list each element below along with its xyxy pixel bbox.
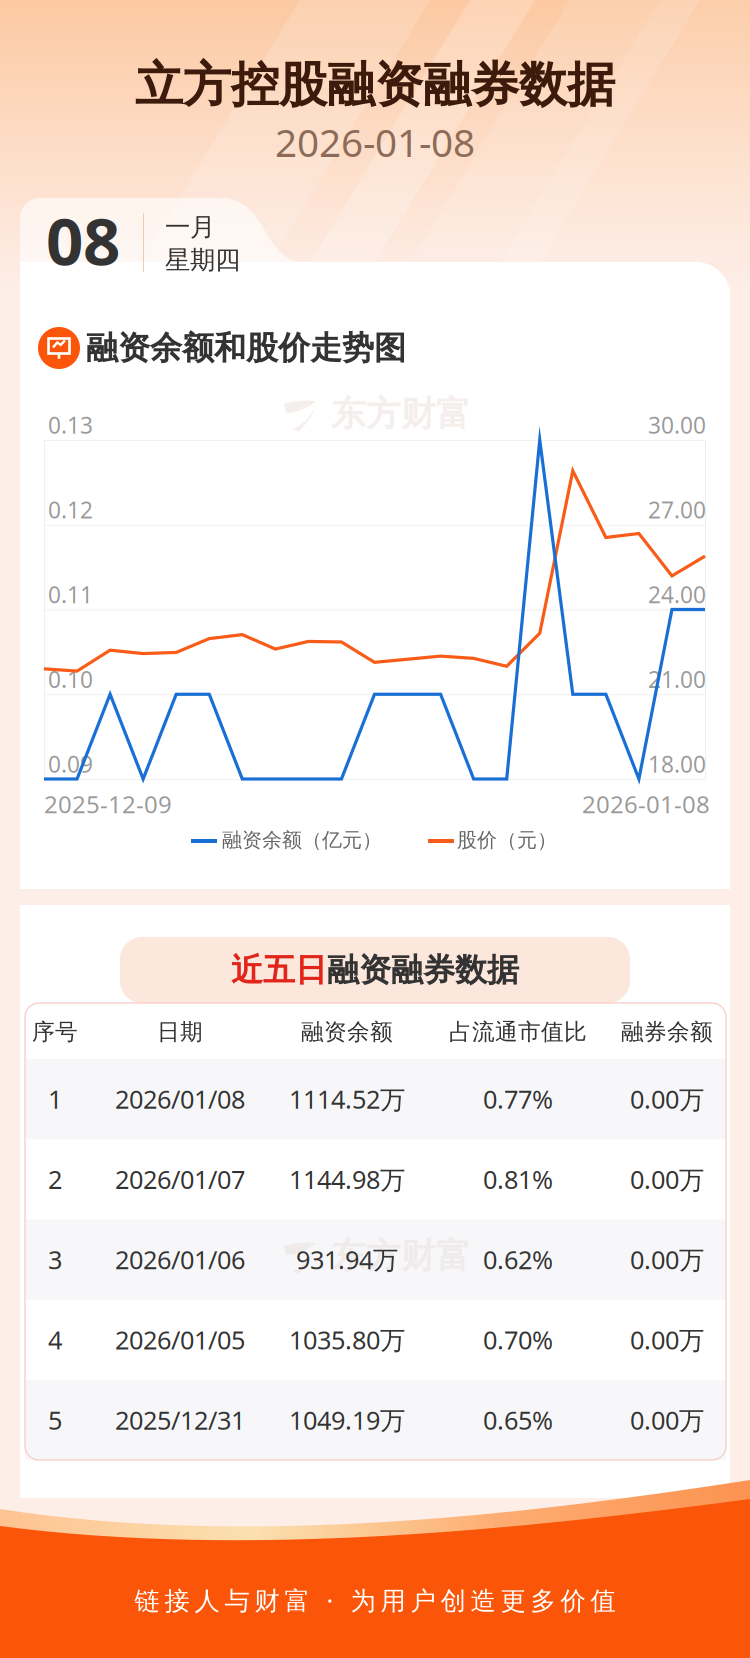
staticText: 08: [46, 197, 120, 283]
staticText: 2026/01/08: [115, 1082, 245, 1116]
staticText: 0.11: [48, 579, 93, 609]
staticText: 东方财富: [331, 393, 471, 435]
staticText: 24.00: [648, 579, 706, 609]
staticText: 2026-01-08: [582, 788, 710, 820]
staticText: 5: [48, 1403, 62, 1437]
staticText: 0.12: [48, 495, 93, 525]
staticText: 星期四: [165, 244, 240, 275]
staticText: 21.00: [648, 664, 706, 694]
staticText: 0.62%: [483, 1243, 553, 1276]
staticText: 日期: [157, 1018, 203, 1046]
staticText: 2025-12-09: [44, 788, 172, 820]
staticText: 2: [48, 1162, 62, 1196]
staticText: 一月: [165, 211, 215, 242]
staticText: 0.77%: [483, 1082, 553, 1116]
staticText: 融资余额: [301, 1018, 393, 1046]
staticText: 0.70%: [483, 1323, 553, 1356]
staticText: 931.94万: [296, 1243, 398, 1276]
staticText: 0.10: [48, 664, 93, 694]
staticText: 融券余额: [621, 1018, 713, 1046]
staticText: 0.00万: [630, 1403, 704, 1437]
staticText: 股价（元）: [457, 828, 557, 852]
staticText: 融资融券数据: [327, 950, 519, 990]
staticText: 2026-01-08: [275, 116, 475, 168]
staticText: 3: [48, 1243, 62, 1276]
staticText: 1: [48, 1082, 62, 1116]
staticText: 立方控股融资融券数据: [135, 55, 615, 114]
staticText: 融资余额和股价走势图: [86, 328, 406, 368]
staticText: 1144.98万: [289, 1162, 405, 1196]
staticText: 18.00: [648, 749, 706, 779]
staticText: 链接人与财富 · 为用户创造更多价值: [134, 1583, 615, 1617]
staticText: 2026/01/05: [115, 1323, 245, 1356]
staticText: 0.13: [48, 410, 93, 440]
staticText: 1035.80万: [289, 1323, 405, 1356]
staticText: 2026/01/06: [115, 1243, 245, 1276]
staticText: 占流通市值比: [449, 1018, 587, 1046]
staticText: 27.00: [648, 495, 706, 525]
staticText: 东方财富: [331, 1235, 471, 1277]
staticText: 融资余额（亿元）: [222, 828, 382, 852]
staticText: 1049.19万: [289, 1403, 405, 1437]
staticText: 4: [48, 1323, 62, 1356]
staticText: 序号: [32, 1018, 78, 1046]
staticText: 1114.52万: [289, 1082, 405, 1116]
staticText: 0.00万: [630, 1243, 704, 1276]
staticText: 0.65%: [483, 1403, 553, 1437]
staticText: 0.00万: [630, 1162, 704, 1196]
staticText: 2026/01/07: [115, 1162, 245, 1196]
staticText: 2025/12/31: [115, 1403, 245, 1437]
staticText: 0.09: [48, 749, 93, 779]
staticText: 0.00万: [630, 1082, 704, 1116]
staticText: 30.00: [648, 410, 706, 440]
staticText: 0.81%: [483, 1162, 553, 1196]
staticText: 0.00万: [630, 1323, 704, 1356]
staticText: 近五日: [231, 950, 327, 990]
